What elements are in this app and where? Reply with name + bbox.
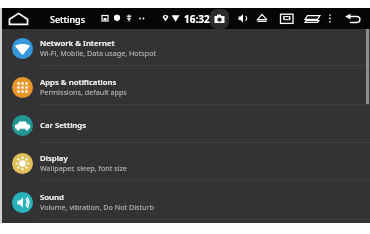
staticText: 16:32 — [184, 12, 210, 26]
staticText: Network & Internet — [40, 38, 115, 49]
staticText: Wallpaper, sleep, font size — [40, 163, 127, 173]
button[interactable]: Display — [0, 144, 370, 182]
button[interactable]: Screenshot — [210, 9, 229, 29]
button[interactable]: Apps & notifications — [0, 68, 370, 106]
staticText: Sound — [40, 192, 64, 203]
staticText: Volume, vibration, Do Not Disturb — [40, 202, 154, 212]
button[interactable]: Settings — [50, 13, 86, 25]
staticText: Display — [40, 153, 68, 164]
staticText: Wi-Fi, Mobile, Data usage, Hotspot — [40, 48, 157, 58]
button[interactable]: Car Settings — [0, 106, 370, 144]
staticText: Car Settings — [40, 120, 87, 131]
button[interactable]: Home — [8, 12, 29, 26]
button[interactable]: Sound — [0, 183, 370, 221]
staticText: Apps & notifications — [40, 77, 117, 88]
button[interactable]: Network & Internet — [0, 29, 370, 67]
staticText: Permissions, default apps — [40, 87, 127, 97]
